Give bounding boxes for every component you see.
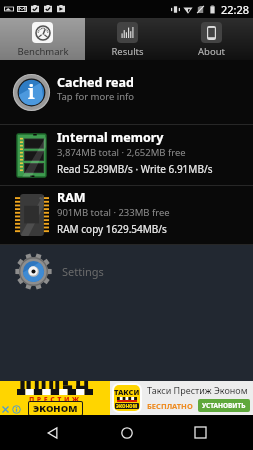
button[interactable]: Internal memory bbox=[0, 125, 253, 185]
button[interactable]: Settings bbox=[0, 245, 253, 298]
button[interactable]: Home bbox=[107, 415, 147, 450]
staticText: About bbox=[198, 45, 225, 58]
button[interactable]: Ad information bbox=[12, 405, 21, 414]
button[interactable]: Benchmark bbox=[0, 18, 85, 60]
staticText: RAM bbox=[57, 189, 86, 206]
staticText: Такси Престиж Эконом bbox=[147, 384, 248, 396]
button[interactable]: Results bbox=[85, 18, 169, 60]
staticText: Internal memory bbox=[57, 129, 164, 146]
staticText: Tap for more info bbox=[57, 90, 135, 103]
staticText: УСТАНОВИТЬ bbox=[202, 401, 246, 410]
staticText: ТАКСИ bbox=[114, 387, 140, 397]
staticText: ЭКОНОМ bbox=[116, 403, 138, 409]
staticText: Settings bbox=[62, 264, 104, 279]
button[interactable]: i bbox=[0, 60, 253, 124]
staticText: Read 52.89MB/s · Write 6.91MB/s bbox=[57, 162, 213, 176]
staticText: i bbox=[28, 79, 35, 105]
button[interactable]: RAM bbox=[0, 186, 253, 244]
staticText: 901MB total · 233MB free bbox=[57, 206, 170, 219]
button[interactable]: Close ad bbox=[1, 405, 10, 414]
staticText: Cached read bbox=[57, 74, 134, 91]
staticText: 22:28 bbox=[221, 2, 250, 17]
button[interactable]: About bbox=[169, 18, 253, 60]
staticText: ЭКОНОМ bbox=[33, 402, 78, 415]
staticText: 3,874MB total · 2,652MB free bbox=[57, 146, 186, 159]
staticText: Benchmark bbox=[17, 45, 69, 58]
staticText: RAM copy 1629.54MB/s bbox=[57, 222, 167, 236]
button[interactable]: Back bbox=[33, 415, 73, 450]
staticText: БЕСПЛАТНО bbox=[147, 401, 193, 411]
button[interactable]: ПРЕСТИЖ bbox=[0, 381, 253, 415]
staticText: ПРЕСТИЖ bbox=[29, 395, 82, 405]
button[interactable]: Recent apps bbox=[180, 415, 220, 450]
staticText: Results bbox=[111, 45, 144, 58]
button[interactable]: УСТАНОВИТЬ bbox=[198, 399, 250, 412]
